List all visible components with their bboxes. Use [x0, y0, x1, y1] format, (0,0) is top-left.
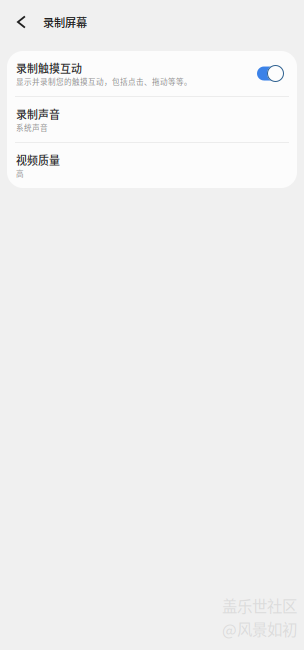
staticText: 视频质量 — [16, 152, 60, 168]
staticText: 系统声音 — [16, 122, 48, 133]
staticText: 录制声音 — [16, 106, 60, 122]
button[interactable]: 录制声音 — [7, 97, 297, 142]
staticText: 录制屏幕 — [43, 14, 87, 30]
staticText: @风景如初 — [222, 618, 297, 640]
staticText: 盖乐世社区 — [222, 594, 297, 617]
button[interactable]: Back — [17, 9, 43, 35]
button[interactable]: 录制触摸互动 — [7, 51, 297, 96]
button[interactable]: 视频质量 — [7, 143, 297, 188]
staticText: 显示并录制您的触摸互动，包括点击、拖动等等。 — [16, 76, 192, 87]
staticText: 录制触摸互动 — [16, 60, 82, 76]
staticText: 高 — [16, 168, 24, 179]
